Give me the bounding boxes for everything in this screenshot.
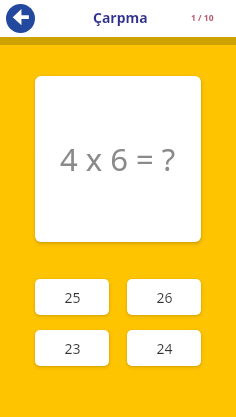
button[interactable]: 24 bbox=[127, 330, 201, 366]
staticText: 4 x 6 = ? bbox=[60, 138, 176, 180]
staticText: 1 / 10 bbox=[191, 12, 214, 24]
button[interactable]: 4 x 6 = ? bbox=[35, 76, 201, 242]
staticText: Çarpma bbox=[93, 8, 148, 27]
button[interactable]: Back bbox=[6, 4, 35, 33]
button[interactable]: 23 bbox=[35, 330, 109, 366]
button[interactable]: 26 bbox=[127, 279, 201, 315]
staticText: 26 bbox=[156, 288, 173, 307]
staticText: 23 bbox=[64, 339, 81, 358]
staticText: 24 bbox=[156, 339, 173, 358]
staticText: 25 bbox=[64, 288, 81, 307]
button[interactable]: 25 bbox=[35, 279, 109, 315]
